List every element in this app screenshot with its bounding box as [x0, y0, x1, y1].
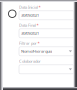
button[interactable]: Nome/Hierarquia	[19, 47, 74, 56]
staticText: *	[39, 5, 41, 10]
staticText: *	[37, 23, 39, 28]
staticText: Data Inicial	[19, 5, 38, 10]
button[interactable]: 30/09/2021	[19, 29, 74, 38]
staticText: Data Final	[19, 23, 36, 28]
staticText: Filtrar por	[19, 41, 37, 46]
button[interactable]: 30/09/2021	[19, 11, 74, 20]
staticText: Colaborador	[19, 59, 41, 64]
staticText: 30/09/2021	[21, 13, 39, 18]
button[interactable]	[19, 65, 74, 74]
staticText: Nome/Hierarquia	[21, 49, 52, 54]
staticText: *	[38, 41, 40, 46]
staticText: 30/09/2021	[21, 31, 39, 36]
